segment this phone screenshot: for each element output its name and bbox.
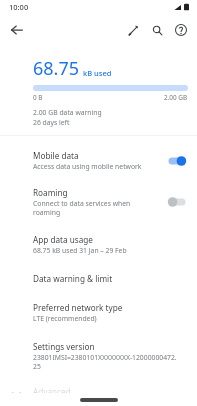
button[interactable]: Edit	[121, 18, 145, 42]
staticText: 68.75	[33, 56, 80, 81]
staticText: 2.00 GB data warning	[33, 108, 102, 117]
staticText: Mobile data	[33, 150, 79, 161]
button[interactable]: Roaming	[0, 179, 197, 225]
button[interactable]: Back	[5, 18, 29, 42]
button[interactable]: App data usage	[0, 225, 197, 264]
staticText: Network, Access point names,	[33, 398, 129, 406]
staticText: 2.00 GB	[164, 93, 188, 102]
staticText: Connect to data services when roaming	[33, 199, 131, 217]
staticText: kB used	[83, 68, 112, 78]
button[interactable]: Data warning & limit	[0, 264, 197, 293]
staticText: Data warning & limit	[33, 273, 113, 284]
button[interactable]: Advanced	[0, 380, 197, 406]
button[interactable]: Settings version	[0, 332, 197, 380]
staticText: 23801IMSI=2380101XXXXXXXX-12000000472. 2…	[33, 353, 177, 371]
staticText: 0 B	[33, 93, 43, 102]
staticText: Advanced	[33, 386, 71, 397]
staticText: 68.75 kB used 31 Jan – 29 Feb	[33, 246, 127, 255]
staticText: App data usage	[33, 234, 93, 245]
staticText: Roaming	[33, 187, 68, 198]
button[interactable]: Help	[169, 18, 193, 42]
staticText: Access data using mobile network	[33, 162, 142, 171]
staticText: 10:00	[9, 2, 29, 12]
staticText: Settings version	[33, 341, 95, 352]
button[interactable]: Search	[145, 18, 169, 42]
button[interactable]: Mobile data	[0, 142, 197, 179]
staticText: LTE (recommended)	[33, 314, 97, 323]
staticText: 26 days left	[33, 118, 70, 127]
staticText: Preferred network type	[33, 302, 123, 313]
button[interactable]: Preferred network type	[0, 293, 197, 332]
